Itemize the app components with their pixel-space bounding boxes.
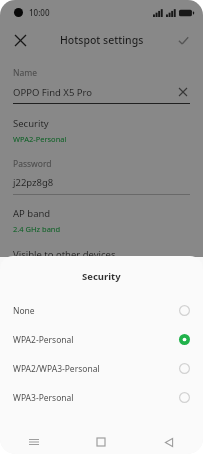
button[interactable]: WPA2-Personal (0, 325, 203, 354)
staticText: j22pz8g8 (13, 176, 54, 189)
button[interactable]: AP band (13, 207, 190, 234)
button[interactable]: Security (13, 117, 190, 144)
button[interactable]: WPA3-Personal (0, 383, 203, 412)
staticText: Name (13, 67, 37, 79)
staticText: WPA2/WPA3-Personal (13, 363, 179, 375)
staticText: WPA3-Personal (13, 392, 179, 404)
staticText: Security (82, 270, 121, 283)
staticText: When turned off, this hotspot can be con… (13, 264, 156, 284)
button[interactable]: Back (135, 430, 203, 454)
button[interactable]: Confirm (171, 28, 195, 52)
button[interactable]: Home (67, 430, 135, 454)
staticText: Password (13, 158, 52, 170)
staticText: 10:00 (29, 7, 50, 18)
button[interactable]: Clear name (176, 85, 190, 99)
staticText: WPA2-Personal (13, 334, 179, 346)
staticText: WPA2-Personal (13, 134, 67, 144)
staticText: OPPO Find X5 Pro (13, 86, 176, 99)
staticText: 2.4 GHz band (13, 224, 61, 234)
button[interactable]: Visible to other devices (13, 248, 190, 284)
button[interactable]: WPA2/WPA3-Personal (0, 354, 203, 383)
staticText: Visible to other devices (13, 248, 116, 261)
staticText: Security (13, 117, 49, 130)
staticText: None (13, 305, 179, 317)
button[interactable]: Close (8, 28, 32, 52)
staticText: Hotspot settings (60, 33, 144, 47)
button[interactable]: None (0, 296, 203, 325)
button[interactable]: Recent apps (0, 430, 67, 454)
staticText: AP band (13, 207, 51, 220)
